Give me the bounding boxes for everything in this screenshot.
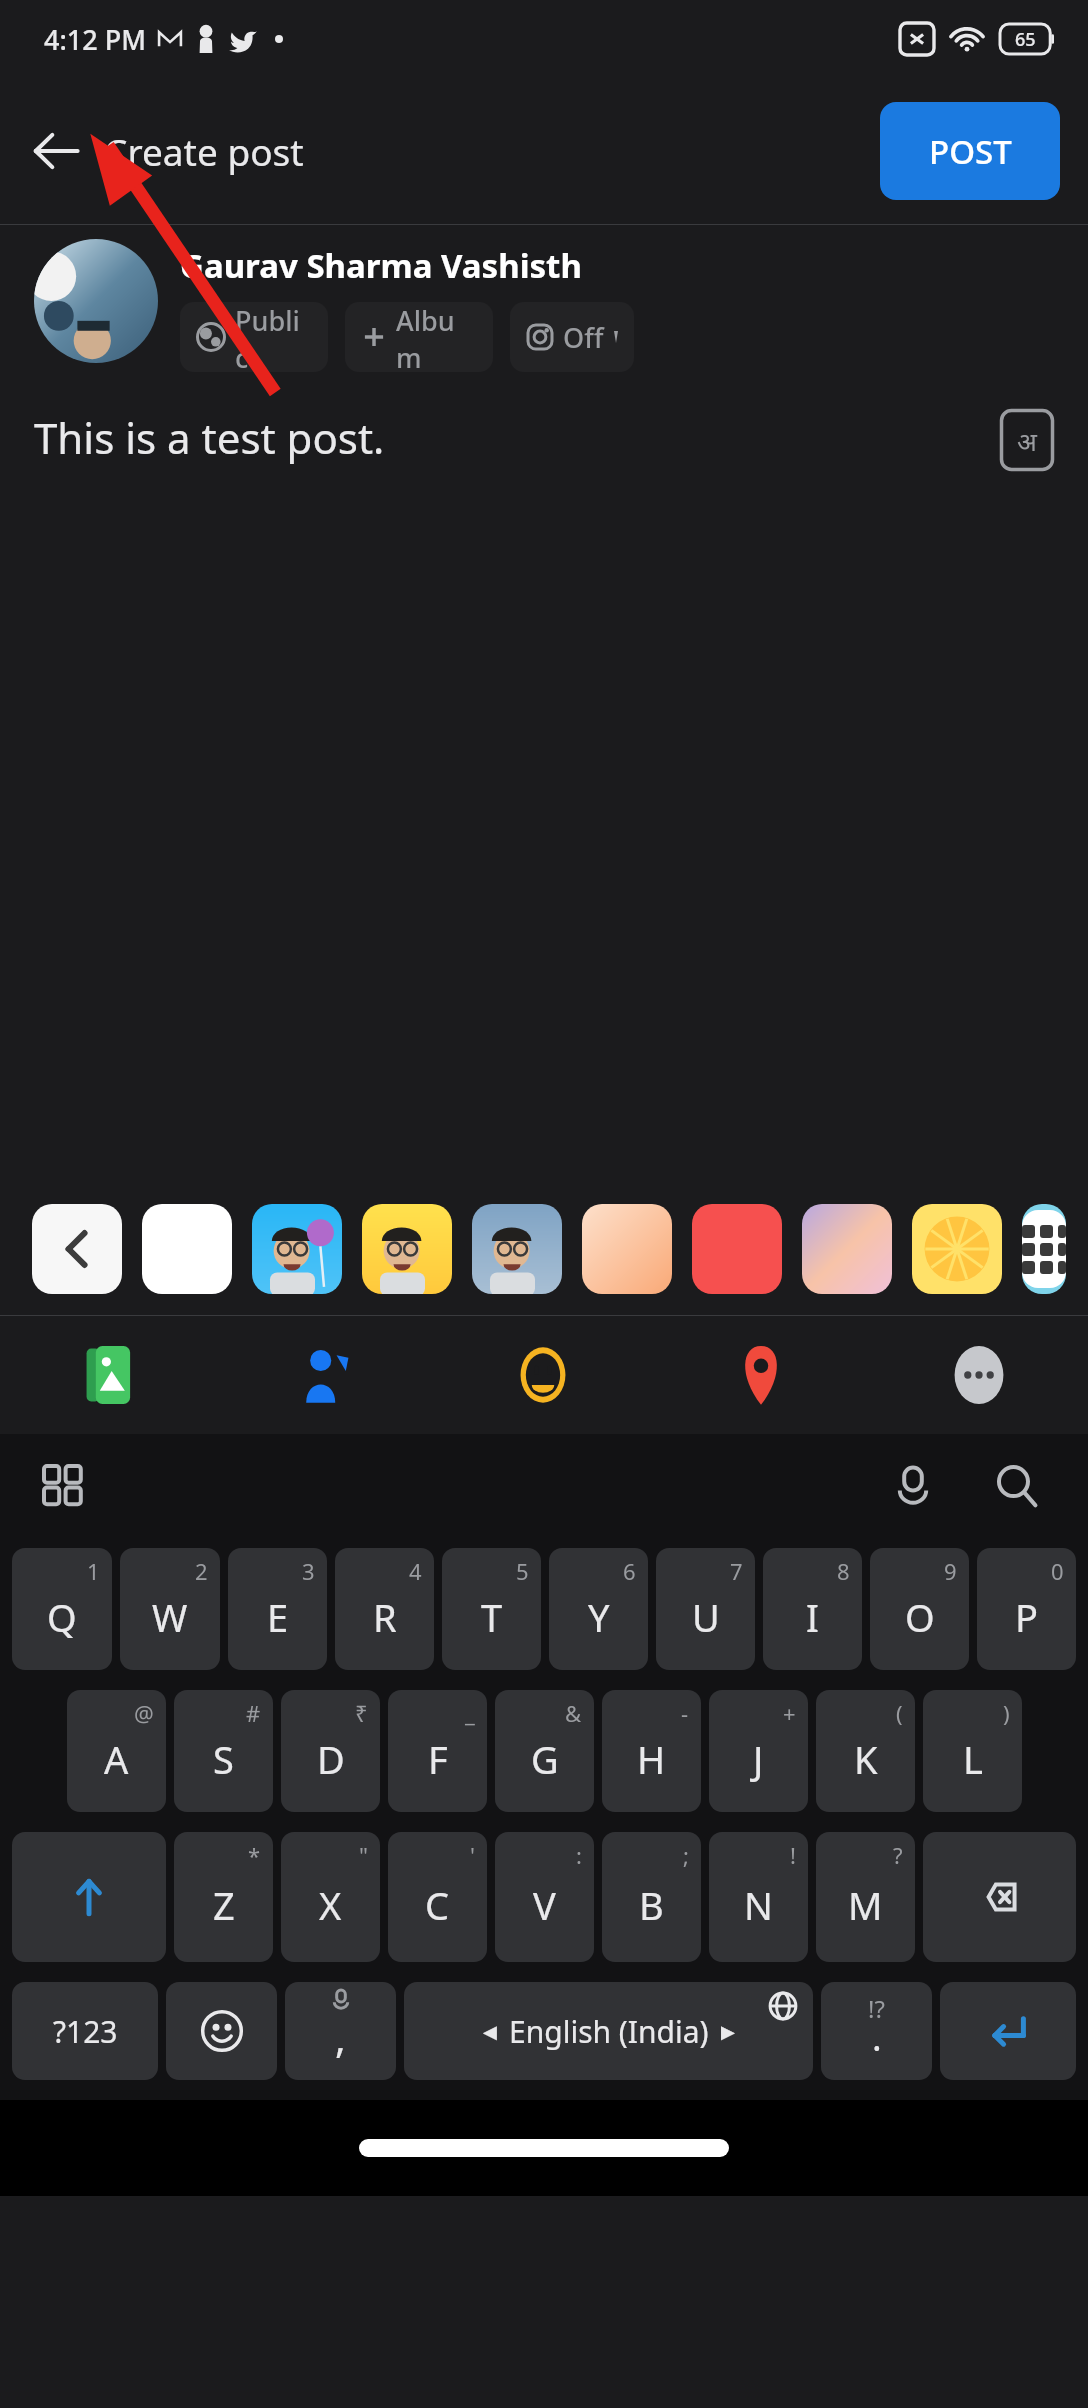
button[interactable]: 6	[549, 1548, 648, 1670]
button[interactable]: Tag people	[217, 1316, 434, 1434]
staticText: C	[425, 1879, 450, 1931]
button[interactable]: Profile picture	[34, 239, 158, 363]
button[interactable]: ?	[816, 1832, 915, 1962]
button[interactable]: ,	[285, 1982, 396, 2080]
button[interactable]: Photo gallery	[0, 1316, 217, 1434]
button[interactable]: :	[495, 1832, 594, 1962]
button[interactable]: "	[281, 1832, 380, 1962]
staticText: R	[373, 1591, 397, 1643]
staticText: Album	[396, 302, 477, 372]
staticText: "	[359, 1840, 368, 1870]
button[interactable]: Sticker	[582, 1204, 672, 1294]
button[interactable]: ?123	[12, 1982, 158, 2080]
staticText: Q	[47, 1591, 77, 1643]
button[interactable]: Toolbar	[36, 1458, 92, 1514]
staticText: 4:12 PM	[44, 21, 146, 58]
button[interactable]: -	[602, 1690, 701, 1812]
button[interactable]: Enter	[940, 1982, 1076, 2080]
button[interactable]: &	[495, 1690, 594, 1812]
staticText: -	[681, 1698, 689, 1728]
button[interactable]: Sticker	[692, 1204, 782, 1294]
staticText: Gaurav Sharma Vashisth	[180, 243, 582, 288]
button[interactable]: Public	[180, 302, 328, 372]
staticText: _	[465, 1698, 475, 1728]
button[interactable]: Voice input	[878, 1451, 948, 1521]
button[interactable]: Sticker	[912, 1204, 1002, 1294]
button[interactable]: Avatar sticker	[252, 1204, 342, 1294]
staticText: U	[692, 1591, 720, 1643]
staticText: 3	[302, 1556, 315, 1586]
staticText: (	[896, 1698, 903, 1728]
staticText: ?	[893, 1840, 903, 1870]
staticText: 8	[837, 1556, 850, 1586]
staticText: D	[317, 1733, 345, 1785]
button[interactable]: More options	[870, 1316, 1088, 1434]
staticText: ?123	[53, 2011, 118, 2052]
button[interactable]: Check in	[652, 1316, 870, 1434]
button[interactable]: 8	[763, 1548, 862, 1670]
staticText: V	[533, 1879, 556, 1931]
button[interactable]	[166, 1982, 277, 2080]
staticText: O	[905, 1591, 935, 1643]
button[interactable]: @	[67, 1690, 166, 1812]
button[interactable]: !?	[821, 1982, 932, 2080]
staticText: ,	[335, 2010, 346, 2064]
staticText: 4	[409, 1556, 422, 1586]
button[interactable]: Sticker	[802, 1204, 892, 1294]
staticText: 2	[195, 1556, 208, 1586]
button[interactable]: 3	[228, 1548, 327, 1670]
staticText: This is a test post.	[34, 409, 385, 466]
button[interactable]: *	[174, 1832, 273, 1962]
button[interactable]: POST	[880, 102, 1060, 200]
staticText: 5	[516, 1556, 529, 1586]
staticText: Public	[235, 302, 312, 372]
button[interactable]: 4	[335, 1548, 434, 1670]
staticText: '	[470, 1840, 475, 1870]
button[interactable]: )	[923, 1690, 1022, 1812]
button[interactable]: Avatar sticker	[472, 1204, 562, 1294]
button[interactable]: Backspace	[923, 1832, 1076, 1962]
button[interactable]: Back	[18, 113, 94, 189]
button[interactable]: ₹	[281, 1690, 380, 1812]
button[interactable]: !	[709, 1832, 808, 1962]
button[interactable]: Shift	[12, 1832, 166, 1962]
staticText: 9	[944, 1556, 957, 1586]
staticText: ◀	[483, 2021, 497, 2042]
button[interactable]: Avatar sticker	[362, 1204, 452, 1294]
button[interactable]: 5	[442, 1548, 541, 1670]
button[interactable]: +	[709, 1690, 808, 1812]
button[interactable]: 9	[870, 1548, 969, 1670]
staticText: :	[576, 1840, 582, 1870]
button[interactable]: 2	[120, 1548, 220, 1670]
staticText: Create post	[104, 126, 304, 176]
button[interactable]: _	[388, 1690, 487, 1812]
staticText: .	[872, 2013, 882, 2062]
button[interactable]: Album	[345, 302, 493, 372]
button[interactable]: All stickers	[1022, 1204, 1066, 1294]
button[interactable]: Feeling or activity	[434, 1316, 652, 1434]
staticText: T	[481, 1591, 503, 1643]
button[interactable]: (	[816, 1690, 915, 1812]
staticText: A	[104, 1733, 129, 1785]
button[interactable]: #	[174, 1690, 273, 1812]
button[interactable]: Previous	[32, 1204, 122, 1294]
button[interactable]: ;	[602, 1832, 701, 1962]
staticText: +	[783, 1698, 796, 1728]
button[interactable]: 7	[656, 1548, 755, 1670]
staticText: 6	[623, 1556, 636, 1586]
button[interactable]: Blank sticker	[142, 1204, 232, 1294]
button[interactable]: Off	[510, 302, 634, 372]
button[interactable]: 0	[977, 1548, 1076, 1670]
staticText: &	[565, 1698, 582, 1728]
button[interactable]: Switch language	[1000, 409, 1054, 471]
staticText: Off	[563, 319, 604, 356]
button[interactable]: ◀	[404, 1982, 813, 2080]
staticText: English (India)	[509, 2011, 709, 2052]
button[interactable]: Search	[982, 1451, 1052, 1521]
staticText: ₹	[355, 1698, 368, 1728]
button[interactable]: '	[388, 1832, 487, 1962]
staticText: @	[134, 1698, 154, 1728]
staticText: I	[806, 1591, 819, 1643]
staticText: S	[213, 1733, 234, 1785]
button[interactable]: 1	[12, 1548, 112, 1670]
